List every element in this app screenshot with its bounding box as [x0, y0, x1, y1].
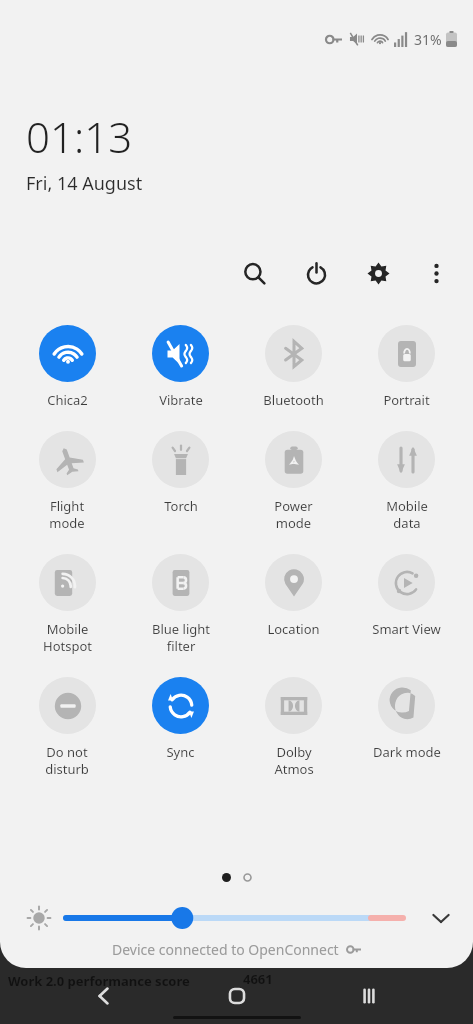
- button[interactable]: Bluetooth: [237, 325, 350, 409]
- button[interactable]: Blue light filter: [124, 554, 237, 655]
- button[interactable]: Sync: [124, 677, 237, 761]
- button[interactable]: Back: [76, 968, 132, 1024]
- button[interactable]: Settings: [357, 252, 399, 294]
- button[interactable]: Smart View: [350, 554, 463, 638]
- button[interactable]: Vibrate: [124, 325, 237, 409]
- button[interactable]: Mobile Hotspot: [10, 554, 124, 655]
- staticText: Do not disturb: [45, 743, 89, 778]
- staticText: Work 2.0 performance score: [8, 972, 190, 990]
- button[interactable]: Portrait: [350, 325, 463, 409]
- staticText: Flight mode: [49, 497, 85, 532]
- button[interactable]: Chica2: [10, 325, 124, 409]
- staticText: Dolby Atmos: [274, 743, 314, 778]
- staticText: Dark mode: [373, 743, 441, 761]
- button[interactable]: Mobile data: [350, 431, 463, 532]
- staticText: Device connected to OpenConnect: [112, 940, 339, 959]
- staticText: Bluetooth: [263, 391, 324, 409]
- button[interactable]: More options: [415, 252, 457, 294]
- staticText: Portrait: [383, 391, 430, 409]
- staticText: 01:13: [26, 108, 133, 165]
- staticText: Mobile data: [386, 497, 428, 532]
- staticText: Smart View: [372, 620, 441, 638]
- button[interactable]: Flight mode: [10, 431, 124, 532]
- button[interactable]: Dolby Atmos: [237, 677, 350, 778]
- staticText: Sync: [166, 743, 195, 761]
- button[interactable]: Dark mode: [350, 677, 463, 761]
- button[interactable]: Expand: [421, 898, 461, 938]
- staticText: Location: [267, 620, 320, 638]
- staticText: Chica2: [47, 391, 88, 409]
- button[interactable]: Search: [233, 252, 275, 294]
- button[interactable]: Power mode: [237, 431, 350, 532]
- staticText: Fri, 14 August: [26, 171, 143, 196]
- staticText: Torch: [164, 497, 198, 515]
- staticText: 31%: [414, 30, 442, 49]
- button[interactable]: Torch: [124, 431, 237, 515]
- button[interactable]: Recents: [341, 968, 397, 1024]
- button[interactable]: Location: [237, 554, 350, 638]
- staticText: Mobile Hotspot: [43, 620, 92, 655]
- staticText: Vibrate: [159, 391, 203, 409]
- staticText: 4661: [243, 970, 273, 988]
- button[interactable]: Power off: [295, 252, 337, 294]
- staticText: Power mode: [274, 497, 313, 532]
- staticText: Blue light filter: [152, 620, 210, 655]
- button[interactable]: Home: [209, 968, 265, 1024]
- button[interactable]: Do not disturb: [10, 677, 124, 778]
